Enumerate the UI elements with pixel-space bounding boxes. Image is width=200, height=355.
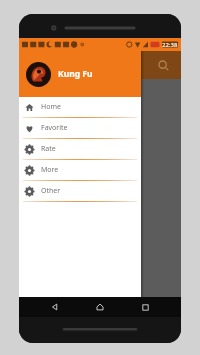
button[interactable]: Home: [19, 97, 141, 117]
button[interactable]: Recents: [136, 298, 154, 316]
staticText: Home: [41, 102, 61, 112]
staticText: 22:38: [162, 41, 178, 49]
staticText: More: [41, 165, 59, 175]
staticText: Kung Fu: [58, 68, 93, 80]
staticText: Other: [41, 186, 61, 196]
staticText: Fundamental: [25, 85, 63, 93]
staticText: Favorite: [41, 123, 68, 133]
button[interactable]: Favorite: [19, 118, 141, 138]
button[interactable]: Other: [19, 181, 141, 201]
button[interactable]: More: [19, 160, 141, 180]
button[interactable]: Home: [91, 298, 109, 316]
button[interactable]: Search: [153, 55, 173, 75]
button[interactable]: Rate: [19, 139, 141, 159]
button[interactable]: Back: [46, 298, 64, 316]
staticText: Rate: [41, 144, 56, 154]
button[interactable]: Kung Fu: [19, 51, 141, 97]
